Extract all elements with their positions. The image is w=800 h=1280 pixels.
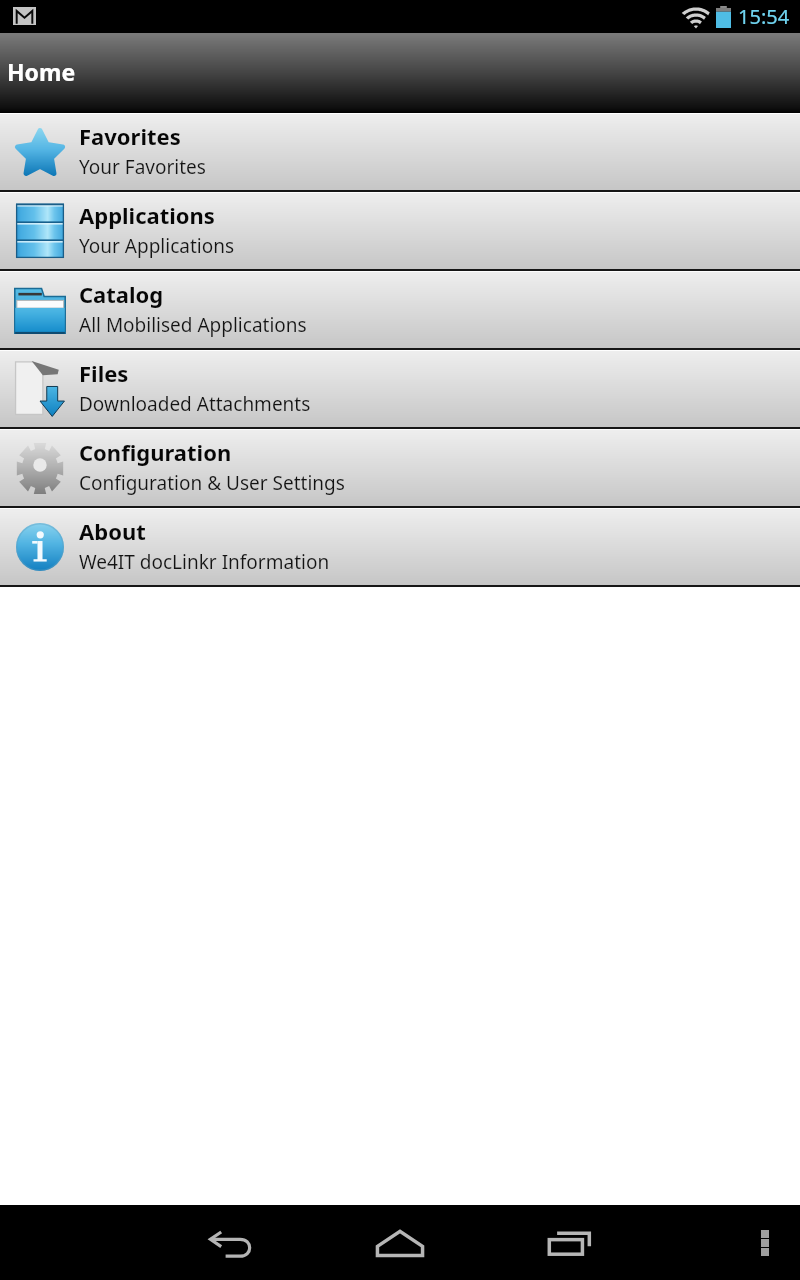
staticText: Catalog bbox=[79, 279, 164, 309]
button[interactable]: More options bbox=[740, 1218, 790, 1268]
button[interactable]: Configuration bbox=[0, 430, 800, 509]
staticText: Your Favorites bbox=[79, 154, 206, 180]
button[interactable]: Recent apps bbox=[540, 1213, 600, 1273]
staticText: Applications bbox=[79, 200, 215, 230]
staticText: 15:54 bbox=[738, 3, 790, 30]
button[interactable]: About bbox=[0, 509, 800, 588]
button[interactable]: Catalog bbox=[0, 272, 800, 351]
button[interactable]: Back bbox=[200, 1213, 260, 1273]
button[interactable]: Favorites bbox=[0, 114, 800, 193]
staticText: We4IT docLinkr Information bbox=[79, 549, 330, 575]
staticText: Favorites bbox=[79, 121, 181, 151]
staticText: Downloaded Attachments bbox=[79, 391, 311, 417]
staticText: Configuration bbox=[79, 437, 232, 467]
button[interactable]: Applications bbox=[0, 193, 800, 272]
button[interactable]: Home bbox=[370, 1213, 430, 1273]
button[interactable]: Files bbox=[0, 351, 800, 430]
staticText: All Mobilised Applications bbox=[79, 312, 307, 338]
staticText: Files bbox=[79, 358, 129, 388]
staticText: Configuration & User Settings bbox=[79, 470, 345, 496]
staticText: Home bbox=[7, 56, 76, 87]
staticText: Your Applications bbox=[79, 233, 235, 259]
staticText: About bbox=[79, 516, 146, 546]
